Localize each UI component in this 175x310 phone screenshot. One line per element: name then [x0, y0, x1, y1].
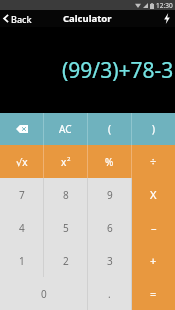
button[interactable]: x — [44, 145, 87, 178]
button[interactable]: X — [132, 178, 175, 211]
button[interactable]: ) — [132, 113, 175, 145]
button[interactable]: 2 — [44, 244, 87, 277]
staticText: Calculator — [63, 12, 112, 25]
button[interactable]: 5 — [44, 211, 87, 244]
button[interactable]: Flash — [159, 10, 175, 27]
staticText: ( — [108, 122, 111, 136]
staticText: 2 — [67, 155, 71, 163]
staticText: 9 — [107, 188, 113, 202]
button[interactable]: AC — [44, 113, 87, 145]
button[interactable]: ÷ — [132, 145, 175, 178]
staticText: 2 — [63, 254, 69, 268]
staticText: 3 — [107, 254, 113, 268]
button[interactable]: % — [88, 145, 131, 178]
button[interactable]: √x — [0, 145, 43, 178]
button[interactable]: ( — [88, 113, 131, 145]
staticText: ÷ — [150, 154, 157, 169]
button[interactable]: 7 — [0, 178, 43, 211]
staticText: 4 — [19, 221, 25, 235]
button[interactable]: = — [132, 277, 175, 310]
staticText: Back — [11, 13, 32, 25]
button[interactable]: 3 — [88, 244, 131, 277]
button[interactable]: 4 — [0, 211, 43, 244]
staticText: √x — [16, 155, 28, 169]
button[interactable]: 6 — [88, 211, 131, 244]
staticText: % — [105, 155, 114, 169]
staticText: = — [150, 286, 157, 301]
staticText: x — [61, 155, 67, 169]
staticText: 6 — [107, 221, 113, 235]
staticText: AC — [59, 122, 72, 136]
button[interactable]: Backspace — [0, 113, 43, 145]
button[interactable]: 0 — [0, 277, 87, 310]
button[interactable]: 8 — [44, 178, 87, 211]
staticText: . — [108, 287, 111, 301]
staticText: X — [150, 187, 157, 202]
staticText: – — [151, 220, 157, 235]
staticText: (99/3)+78-3 — [62, 56, 174, 85]
staticText: 5 — [63, 221, 69, 235]
button[interactable]: 1 — [0, 244, 43, 277]
staticText: 12:30 — [156, 1, 173, 10]
staticText: 8 — [63, 188, 69, 202]
button[interactable]: + — [132, 244, 175, 277]
button[interactable]: – — [132, 211, 175, 244]
staticText: 1 — [19, 254, 25, 268]
staticText: + — [150, 253, 157, 268]
button[interactable]: Back — [0, 10, 36, 27]
staticText: 0 — [41, 287, 47, 301]
staticText: 7 — [19, 188, 25, 202]
button[interactable]: 9 — [88, 178, 131, 211]
staticText: ) — [152, 122, 155, 136]
